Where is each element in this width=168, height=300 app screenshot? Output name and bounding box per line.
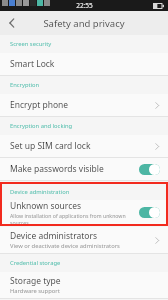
button[interactable]: Make passwords visible [0,158,168,180]
staticText: Hardware support [10,287,60,295]
staticText: Smart Lock [10,58,55,70]
staticText: Unknown sources [10,200,82,212]
button[interactable]: Set up SIM card lock [0,135,168,157]
staticText: Device administration [10,188,70,196]
staticText: Storage type [10,275,61,287]
button[interactable]: Storage type [0,272,168,298]
button[interactable]: Smart Lock [0,53,168,75]
staticText: Safety and privacy [43,17,125,30]
staticText: View or deactivate device administrators [10,242,120,250]
staticText: Encryption [10,81,40,89]
staticText: Device administrators [10,230,98,242]
button[interactable]: Toggle [139,164,160,175]
staticText: 22:55 [76,1,93,10]
staticText: Allow installation of applications from … [10,212,139,224]
staticText: Credential storage [10,259,61,267]
staticText: Set up SIM card lock [10,140,91,152]
button[interactable]: Encrypt phone [0,94,168,116]
button[interactable]: Back [0,11,24,35]
staticText: Encryption and locking [10,122,73,130]
button[interactable]: Toggle [139,207,160,218]
staticText: Encrypt phone [10,99,69,111]
button[interactable]: Unknown sources [2,200,166,224]
button[interactable]: Device administrators [0,227,168,253]
staticText: Screen security [10,40,52,48]
staticText: Make passwords visible [10,163,104,175]
